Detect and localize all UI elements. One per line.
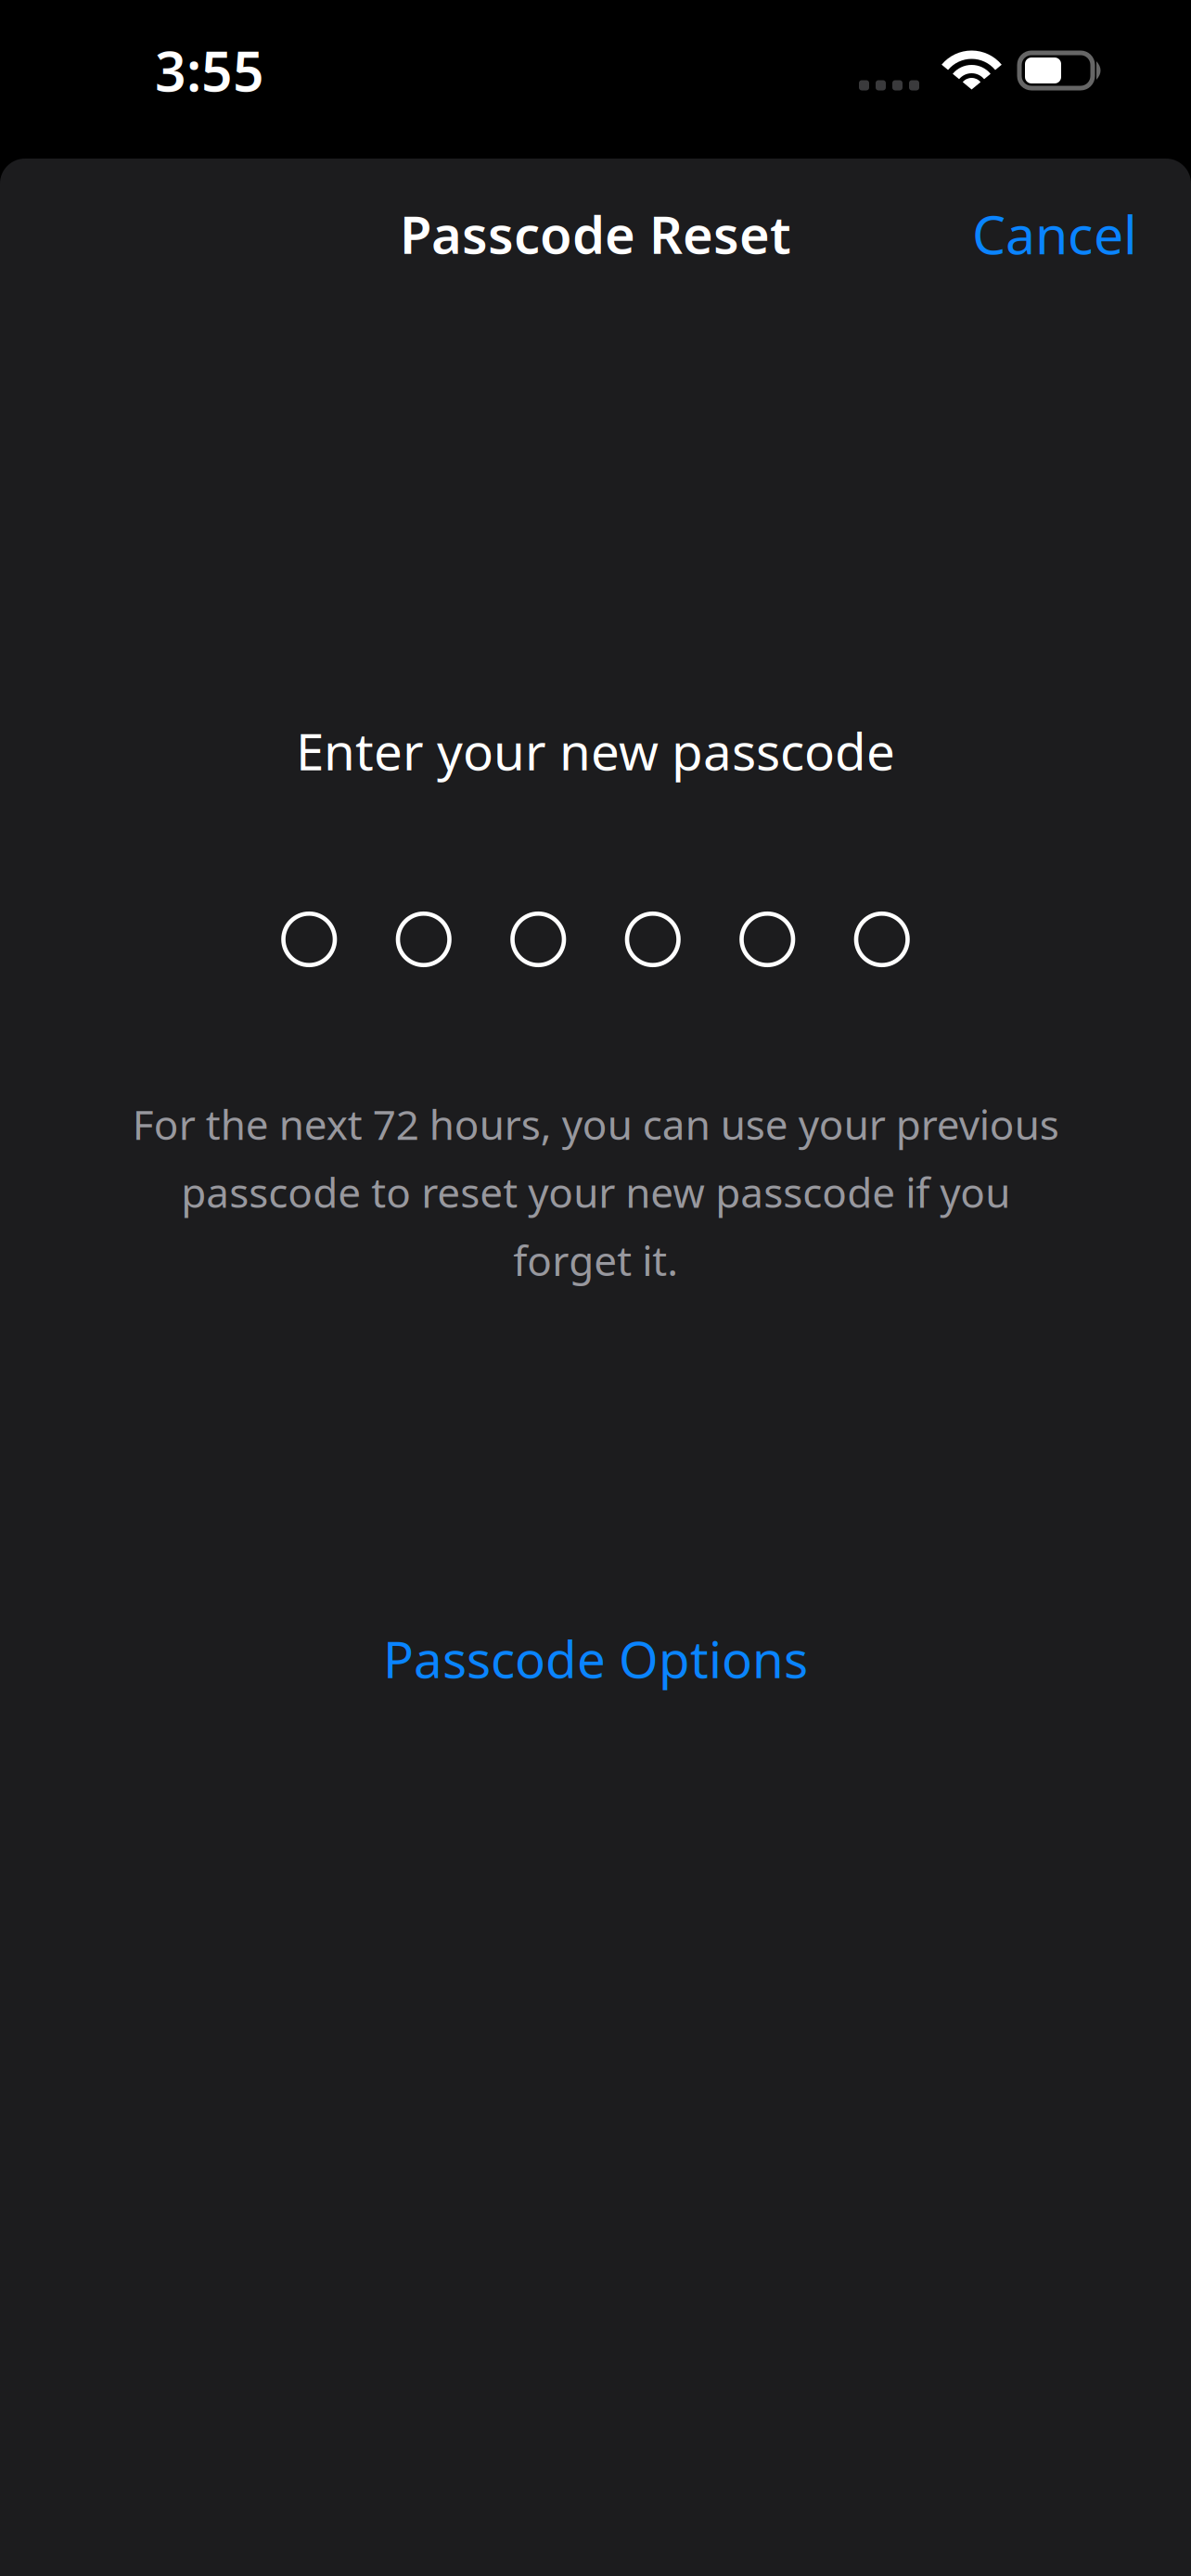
staticText: Cancel [972,198,1137,269]
staticText: For the next 72 hours, you can use your … [132,1097,1059,1287]
staticText: Enter your new passcode [296,717,895,784]
staticText: Passcode Reset [400,199,791,268]
button[interactable]: Cancel [962,183,1147,285]
staticText: 3:55 [155,34,264,107]
staticText: Passcode Options [383,1625,808,1692]
button[interactable]: Passcode Options [336,1626,855,1691]
